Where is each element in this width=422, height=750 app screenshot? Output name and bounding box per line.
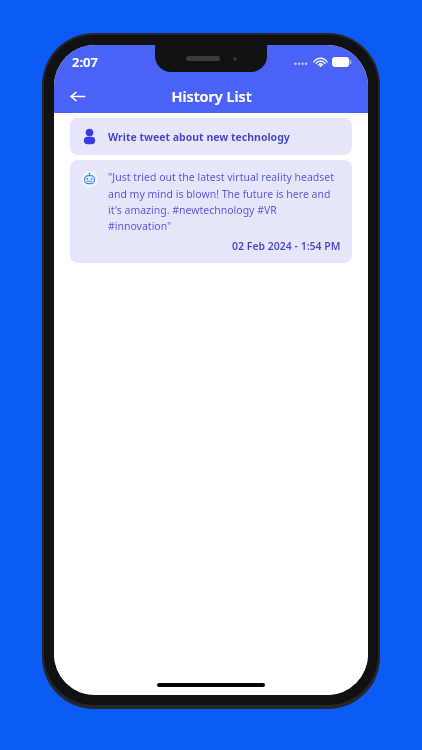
staticText: 2:07: [72, 53, 98, 71]
staticText: History List: [171, 86, 252, 106]
staticText: Write tweet about new technology: [108, 130, 290, 144]
staticText: "Just tried out the latest virtual reali…: [108, 170, 341, 233]
button[interactable]: Write tweet about new technology: [70, 118, 352, 155]
button[interactable]: "Just tried out the latest virtual reali…: [70, 160, 352, 263]
button[interactable]: Back: [60, 79, 94, 113]
staticText: 02 Feb 2024 - 1:54 PM: [232, 239, 341, 253]
